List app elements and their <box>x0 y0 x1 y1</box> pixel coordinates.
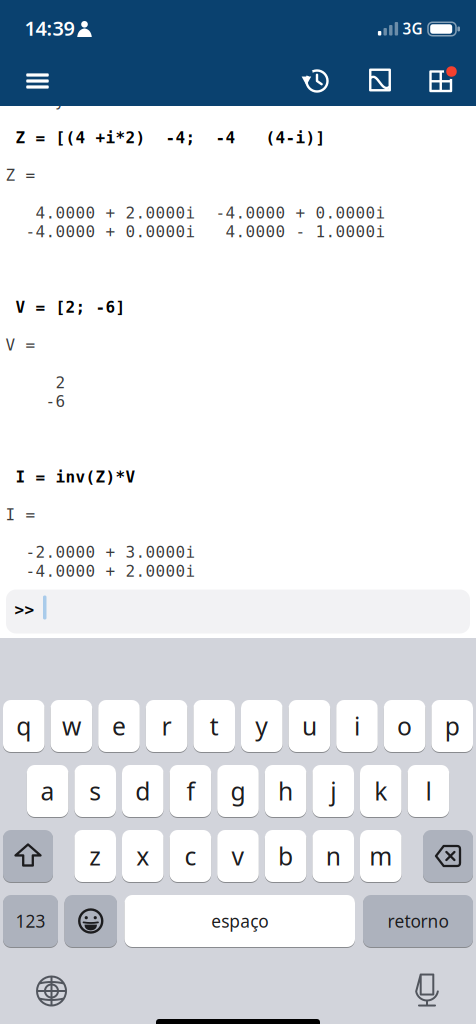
button[interactable]: b <box>265 829 306 882</box>
staticText: g <box>230 774 245 808</box>
button[interactable]: Emoji <box>64 894 117 947</box>
staticText: p <box>445 709 460 743</box>
staticText: w <box>62 709 81 743</box>
button[interactable]: m <box>360 829 402 882</box>
staticText: i <box>354 709 360 743</box>
button[interactable]: Command input <box>6 589 470 633</box>
button[interactable]: Figures <box>363 64 397 96</box>
staticText: I = <box>5 505 35 524</box>
button[interactable]: Next keyboard <box>29 969 73 1013</box>
button[interactable]: k <box>360 764 402 817</box>
staticText: h <box>278 774 293 808</box>
button[interactable]: j <box>312 764 354 817</box>
staticText: 3G <box>402 18 422 39</box>
button[interactable]: r <box>146 699 187 752</box>
button[interactable]: s <box>74 764 116 817</box>
staticText: l <box>425 774 431 808</box>
staticText: -6 <box>5 392 65 411</box>
staticText: z <box>89 839 101 873</box>
staticText: o <box>397 709 412 743</box>
staticText: V = <box>5 336 35 354</box>
staticText: r <box>162 709 172 743</box>
staticText: 14:39 <box>24 14 74 42</box>
button[interactable]: 123 <box>3 894 58 947</box>
staticText: a <box>41 774 55 808</box>
button[interactable]: u <box>289 699 330 752</box>
button[interactable]: q <box>3 699 45 752</box>
staticText: m <box>369 839 392 873</box>
staticText: Z = <box>5 166 35 185</box>
button[interactable]: t <box>193 699 235 752</box>
button[interactable]: y <box>241 699 283 752</box>
staticText: V = [2; -6] <box>5 298 125 316</box>
button[interactable]: e <box>98 699 140 752</box>
button[interactable]: g <box>217 764 259 817</box>
staticText: c <box>184 839 196 873</box>
button[interactable]: Shift <box>3 829 53 882</box>
staticText: d <box>135 774 150 808</box>
staticText: -4.0000 + 2.0000i <box>5 562 195 580</box>
staticText: j <box>330 774 336 808</box>
staticText: q <box>16 709 31 743</box>
staticText: v <box>231 839 244 873</box>
button[interactable]: h <box>265 764 306 817</box>
button[interactable]: w <box>51 699 92 752</box>
staticText: retorno <box>387 909 448 933</box>
staticText: s <box>89 774 101 808</box>
button[interactable]: espaço <box>124 894 355 947</box>
staticText: espaço <box>211 909 268 933</box>
staticText: 4.0000 + 2.0000i -4.0000 + 0.0000i <box>5 204 385 222</box>
button[interactable]: a <box>27 764 68 817</box>
staticText: k <box>374 774 387 808</box>
staticText: t <box>210 709 219 743</box>
staticText: I = inv(Z)*V <box>5 468 135 486</box>
button[interactable]: Workspace <box>426 64 460 96</box>
button[interactable]: v <box>217 829 259 882</box>
staticText: -4.0000 + 0.0000i 4.0000 - 1.0000i <box>5 222 385 241</box>
staticText: b <box>278 839 293 873</box>
button[interactable]: Menu <box>19 66 55 96</box>
button[interactable]: Dictate <box>405 969 449 1013</box>
staticText: n <box>326 839 341 873</box>
button[interactable]: f <box>170 764 211 817</box>
button[interactable]: i <box>336 699 378 752</box>
button[interactable]: c <box>170 829 211 882</box>
staticText: -2.0000 + 3.0000i <box>5 543 195 562</box>
button[interactable]: n <box>312 829 354 882</box>
button[interactable]: x <box>122 829 164 882</box>
button[interactable]: o <box>384 699 425 752</box>
button[interactable]: l <box>408 764 449 817</box>
staticText: y <box>55 92 65 110</box>
button[interactable]: d <box>122 764 164 817</box>
button[interactable]: History <box>300 65 334 97</box>
staticText: x <box>136 839 149 873</box>
button[interactable]: retorno <box>363 894 473 947</box>
button[interactable]: z <box>74 829 116 882</box>
staticText: e <box>112 709 126 743</box>
staticText: f <box>186 774 194 808</box>
button[interactable]: Delete <box>423 829 473 882</box>
staticText: 123 <box>15 909 45 933</box>
staticText: Z = [(4 +i*2) -4; -4 (4-i)] <box>5 128 325 147</box>
staticText: u <box>302 709 317 743</box>
staticText: >> <box>14 600 34 619</box>
staticText: 2 <box>5 373 65 392</box>
staticText: y <box>255 709 268 743</box>
button[interactable]: p <box>431 699 473 752</box>
